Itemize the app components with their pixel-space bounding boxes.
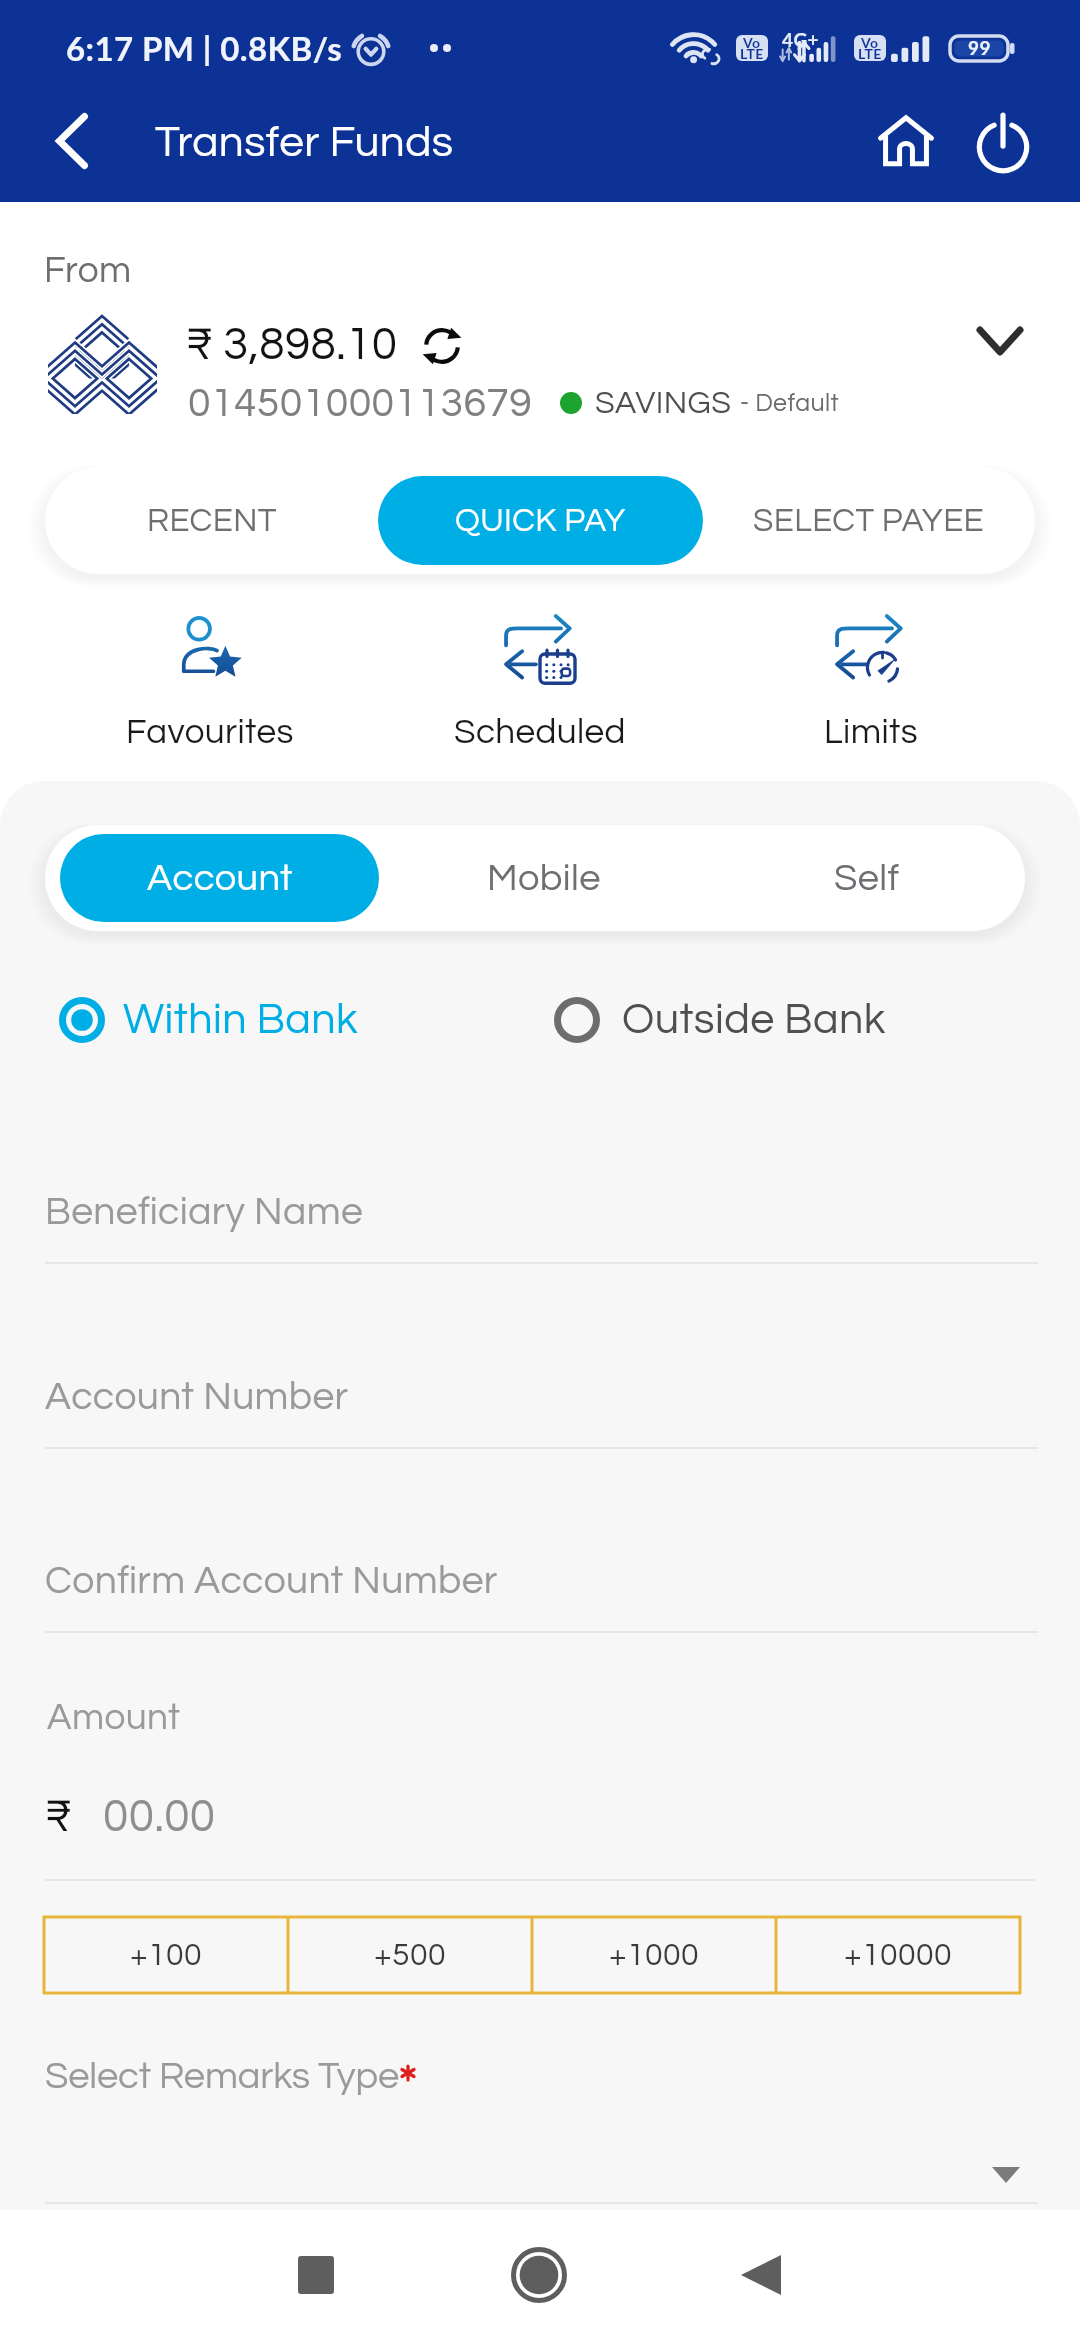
button[interactable]: +1000 [532, 1917, 776, 1993]
button[interactable]: Scheduled [390, 605, 690, 753]
staticText: +500 [374, 1939, 447, 1972]
staticText: Account [147, 859, 293, 898]
staticText: ₹ [44, 1793, 72, 1840]
staticText: LTE [858, 45, 882, 61]
staticText: Select Remarks Type [45, 2057, 400, 2096]
button[interactable]: +10000 [776, 1917, 1020, 1993]
staticText: 6:17 PM | 0.8KB/s [66, 28, 343, 68]
staticText: From [44, 252, 132, 290]
button[interactable]: Logout [962, 98, 1050, 184]
staticText: +10000 [844, 1939, 953, 1972]
button[interactable]: +100 [44, 1917, 288, 1993]
staticText: Amount [47, 1699, 181, 1737]
staticText: 99 [968, 36, 991, 59]
button[interactable]: Recent apps [236, 2210, 396, 2340]
staticText: Confirm Account Number [45, 1561, 498, 1601]
button[interactable]: Within Bank [45, 985, 525, 1055]
button[interactable]: Home [862, 98, 950, 184]
staticText: Self [834, 859, 900, 898]
button[interactable]: Favourites [60, 605, 360, 753]
button[interactable]: Back [681, 2210, 841, 2340]
staticText: Within Bank [123, 998, 359, 1042]
button[interactable]: Outside Bank [540, 985, 1020, 1055]
staticText: SELECT PAYEE [753, 504, 985, 538]
staticText: Limits [824, 714, 919, 750]
button[interactable]: RECENT [45, 467, 378, 574]
staticText: 00.00 [103, 1793, 216, 1840]
button[interactable]: Limits [721, 605, 1021, 753]
staticText: Favourites [126, 714, 294, 750]
button[interactable]: Self [709, 825, 1025, 931]
staticText: LTE [740, 45, 764, 61]
staticText: Scheduled [454, 714, 626, 750]
staticText: ₹ 3,898.10 [185, 321, 398, 368]
staticText: Transfer Funds [155, 120, 454, 165]
staticText: RECENT [147, 504, 277, 538]
button[interactable]: +500 [288, 1917, 532, 1993]
staticText: QUICK PAY [455, 504, 626, 538]
button[interactable]: Mobile [379, 825, 709, 931]
button[interactable]: Select Remarks Type [45, 2120, 1035, 2210]
button[interactable]: QUICK PAY [378, 476, 703, 565]
staticText: Beneficiary Name [45, 1192, 364, 1232]
staticText: Vo [743, 35, 761, 51]
staticText: SAVINGS [595, 387, 732, 420]
button[interactable] [0, 300, 1080, 432]
staticText: 4G+ [782, 28, 820, 51]
button[interactable]: Account [60, 834, 379, 922]
staticText: Outside Bank [622, 998, 886, 1042]
staticText: +1000 [609, 1939, 700, 1972]
staticText: +100 [130, 1939, 203, 1972]
button[interactable]: Back [28, 99, 113, 183]
button[interactable]: Home [459, 2210, 619, 2340]
button[interactable]: SELECT PAYEE [703, 467, 1035, 574]
staticText: Mobile [487, 859, 601, 898]
staticText: Vo [861, 35, 879, 51]
staticText: Account Number [45, 1377, 349, 1417]
staticText: 014501000113679 [188, 382, 533, 424]
staticText: - Default [740, 390, 840, 416]
